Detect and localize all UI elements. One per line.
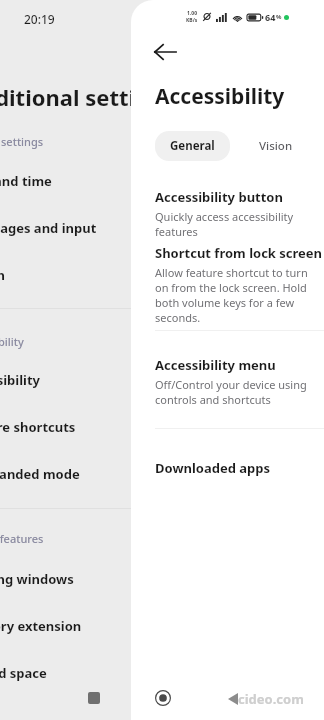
- staticText: Additional settings: [0, 82, 175, 112]
- button[interactable]: Accessibility menu: [131, 356, 324, 407]
- staticText: 1.00: [187, 10, 197, 17]
- staticText: Accessibility button: [155, 188, 283, 206]
- staticText: Floating windows: [0, 570, 74, 588]
- staticText: 64: [265, 11, 276, 23]
- staticText: Quickly access accessibility features: [155, 209, 324, 239]
- staticText: Region: [0, 266, 5, 284]
- staticText: cideo.com: [238, 690, 304, 708]
- button[interactable]: Downloaded apps: [131, 448, 324, 488]
- button[interactable]: Vision: [244, 131, 308, 161]
- staticText: One-handed mode: [0, 465, 80, 483]
- staticText: Shortcut from lock screen: [155, 244, 323, 262]
- staticText: %: [276, 13, 282, 21]
- staticText: General: [170, 138, 215, 154]
- staticText: Allow feature shortcut to turn on from t…: [155, 265, 324, 325]
- staticText: Downloaded apps: [155, 459, 271, 477]
- staticText: Second space: [0, 664, 47, 682]
- staticText: Languages and input: [0, 219, 97, 237]
- button[interactable]: Recent apps: [78, 682, 110, 714]
- staticText: System settings: [0, 134, 44, 149]
- staticText: Off/Control your device using controls a…: [155, 377, 324, 407]
- staticText: Accessibility: [0, 334, 24, 349]
- staticText: 20:19: [24, 11, 55, 27]
- staticText: Accessibility: [0, 371, 41, 389]
- button[interactable]: General: [155, 131, 230, 161]
- button[interactable]: Back: [145, 32, 185, 72]
- button[interactable]: Shortcut from lock screen: [131, 244, 324, 325]
- staticText: Date and time: [0, 172, 52, 190]
- staticText: Special features: [0, 531, 44, 546]
- button[interactable]: Home: [147, 682, 179, 714]
- staticText: Memory extension: [0, 617, 82, 635]
- staticText: KB/s: [186, 17, 198, 24]
- staticText: Feature shortcuts: [0, 418, 76, 436]
- staticText: Accessibility menu: [155, 356, 276, 374]
- button[interactable]: Accessibility button: [131, 188, 324, 239]
- staticText: Accessibility: [155, 82, 285, 111]
- staticText: Vision: [259, 138, 293, 154]
